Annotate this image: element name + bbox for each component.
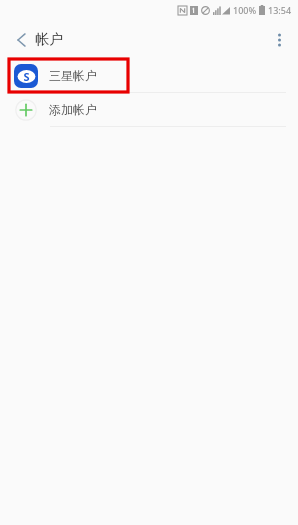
staticText: 帐户 [35,31,63,49]
button[interactable]: Back [8,27,34,53]
staticText: 添加帐户 [49,102,97,117]
button[interactable]: 添加帐户 [0,93,298,126]
button[interactable]: More options [265,26,293,54]
staticText: 100% [233,4,257,16]
staticText: S [23,69,30,84]
staticText: 13:54 [268,4,292,16]
staticText: 三星帐户 [49,68,97,83]
button[interactable]: S [0,59,298,92]
